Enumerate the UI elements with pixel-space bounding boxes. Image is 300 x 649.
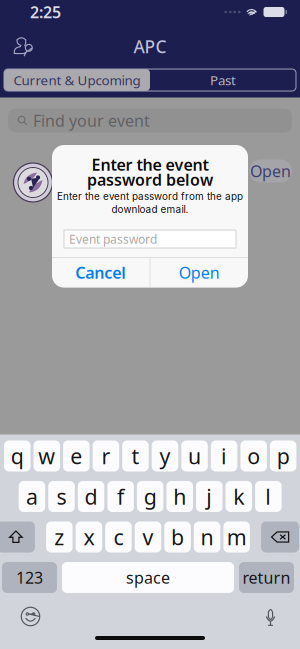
staticText: o	[247, 442, 260, 470]
staticText: q	[11, 442, 24, 470]
staticText: h	[173, 482, 186, 511]
button[interactable]: return	[239, 562, 294, 593]
staticText: l	[265, 482, 271, 511]
staticText: Cancel	[75, 262, 126, 283]
staticText: u	[188, 442, 201, 470]
button[interactable]: 123	[2, 562, 57, 593]
button[interactable]: Shift	[0, 521, 35, 552]
button[interactable]: d	[78, 481, 104, 512]
staticText: v	[142, 523, 153, 551]
staticText: n	[201, 523, 214, 551]
button[interactable]: u	[181, 440, 208, 471]
staticText: g	[144, 482, 157, 511]
button[interactable]: space	[62, 562, 234, 593]
staticText: e	[70, 442, 82, 470]
staticText: j	[206, 482, 212, 511]
staticText: c	[113, 523, 123, 551]
button[interactable]: b	[164, 521, 191, 552]
staticText: Find your event	[33, 110, 150, 131]
button[interactable]: p	[270, 440, 296, 471]
button[interactable]: Delete	[261, 521, 299, 552]
button[interactable]: Emoji	[14, 600, 47, 633]
staticText: Event password	[69, 231, 157, 247]
button[interactable]: c	[105, 521, 132, 552]
staticText: a	[26, 482, 38, 511]
button[interactable]: t	[122, 440, 149, 471]
button[interactable]: k	[226, 481, 252, 512]
button[interactable]: j	[196, 481, 222, 512]
staticText: p	[277, 442, 290, 470]
staticText: 2:25	[30, 1, 61, 23]
button[interactable]: g	[137, 481, 163, 512]
button[interactable]: Open	[249, 159, 292, 182]
staticText: space	[126, 567, 170, 588]
button[interactable]: r	[93, 440, 119, 471]
button[interactable]: i	[211, 440, 237, 471]
button[interactable]: Cancel	[52, 258, 150, 288]
button[interactable]: Past	[150, 69, 296, 91]
staticText: Open	[179, 262, 220, 283]
button[interactable]: o	[240, 440, 267, 471]
staticText: d	[84, 482, 97, 511]
button[interactable]: q	[4, 440, 30, 471]
staticText: r	[101, 442, 110, 470]
button[interactable]: l	[255, 481, 282, 512]
staticText: 123	[16, 567, 43, 588]
staticText: APC	[133, 35, 166, 58]
staticText: download email.	[111, 203, 188, 215]
button[interactable]: Current & Upcoming	[4, 69, 150, 91]
staticText: x	[83, 523, 94, 551]
button[interactable]: f	[107, 481, 134, 512]
button[interactable]: x	[76, 521, 102, 552]
staticText: y	[159, 442, 170, 470]
button[interactable]: Dictate	[257, 600, 284, 633]
staticText: w	[38, 442, 55, 470]
staticText: Enter the event password from the app	[57, 190, 243, 202]
staticText: b	[171, 523, 184, 551]
button[interactable]: Open	[150, 258, 248, 288]
button[interactable]: Find attendees	[9, 31, 39, 61]
button[interactable]: v	[135, 521, 161, 552]
staticText: Enter the event	[91, 154, 208, 175]
staticText: return	[242, 567, 290, 588]
staticText: t	[131, 442, 139, 470]
button[interactable]: z	[46, 521, 73, 552]
staticText: Past	[210, 71, 236, 89]
button[interactable]: h	[166, 481, 193, 512]
button[interactable]: m	[223, 521, 250, 552]
button[interactable]: e	[63, 440, 90, 471]
button[interactable]: y	[152, 440, 178, 471]
button[interactable]: a	[19, 481, 45, 512]
staticText: s	[56, 482, 66, 511]
staticText: m	[227, 523, 247, 551]
staticText: Open	[250, 160, 291, 182]
button[interactable]: s	[48, 481, 75, 512]
staticText: Current & Upcoming	[13, 71, 140, 89]
button[interactable]: w	[33, 440, 60, 471]
staticText: k	[233, 482, 244, 511]
staticText: i	[221, 442, 227, 470]
staticText: password below	[87, 169, 213, 190]
staticText: z	[54, 523, 64, 551]
button[interactable]: n	[194, 521, 220, 552]
staticText: f	[117, 482, 124, 511]
